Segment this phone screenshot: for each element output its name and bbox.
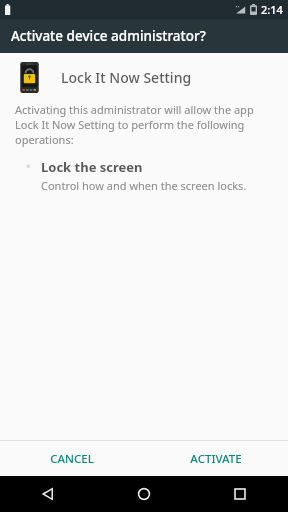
staticText: Activating this administrator will allow… xyxy=(15,102,264,147)
button[interactable]: ACTIVATE xyxy=(144,441,288,476)
button[interactable]: Back xyxy=(0,476,96,512)
staticText: Activate device administrator? xyxy=(11,27,206,45)
staticText: ACTIVATE xyxy=(190,451,242,467)
button[interactable]: Home xyxy=(96,476,192,512)
staticText: Lock the screen xyxy=(41,158,143,176)
button[interactable]: Recent apps xyxy=(192,476,288,512)
staticText: Control how and when the screen locks. xyxy=(41,178,247,193)
staticText: 2:14 xyxy=(261,2,283,17)
button[interactable]: CANCEL xyxy=(0,441,144,476)
staticText: CANCEL xyxy=(50,451,94,467)
staticText: Lock It Now Setting xyxy=(61,68,192,87)
